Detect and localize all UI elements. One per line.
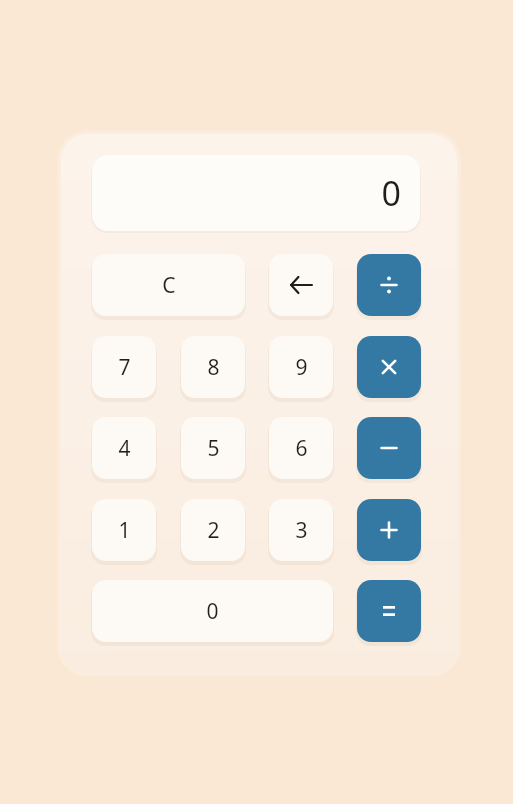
button[interactable]: 9 [269,336,333,398]
staticText: 1 [118,516,131,545]
button[interactable]: 3 [269,499,333,561]
staticText: 0 [381,170,401,216]
button[interactable]: Backspace [269,254,333,316]
button[interactable]: Add [357,499,421,561]
button[interactable]: 0 [92,580,333,642]
button[interactable]: C [92,254,245,316]
staticText: 2 [207,516,220,545]
button[interactable]: Multiply [357,336,421,398]
staticText: 7 [118,353,131,382]
staticText: 9 [295,353,308,382]
button[interactable]: 8 [181,336,245,398]
staticText: 3 [295,516,308,545]
staticText: 8 [207,353,220,382]
staticText: C [162,271,176,300]
button[interactable]: 2 [181,499,245,561]
button[interactable]: 0 [92,155,420,231]
button[interactable]: 4 [92,417,156,479]
button[interactable]: Subtract [357,417,421,479]
staticText: 5 [207,434,220,463]
staticText: 6 [295,434,308,463]
button[interactable]: 7 [92,336,156,398]
staticText: 0 [206,597,219,626]
button[interactable]: 6 [269,417,333,479]
button[interactable]: Divide [357,254,421,316]
button[interactable]: 5 [181,417,245,479]
button[interactable]: Equals [357,580,421,642]
staticText: 4 [118,434,131,463]
button[interactable]: 1 [92,499,156,561]
